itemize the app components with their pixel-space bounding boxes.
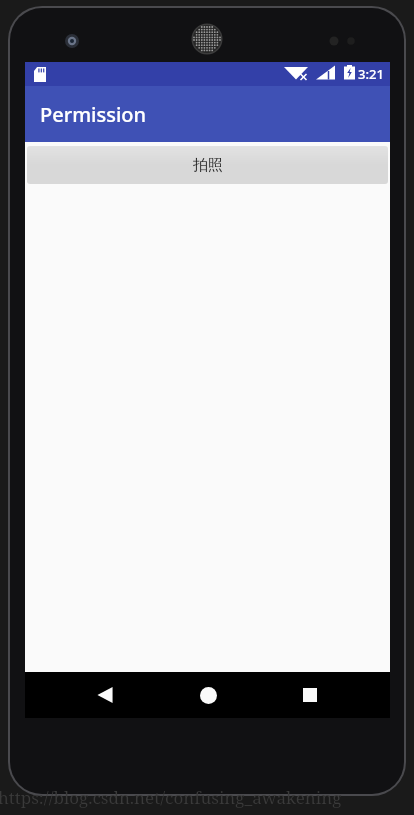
staticText: https://blog.csdn.net/confusing_awakenin…	[0, 786, 342, 809]
button[interactable]: 拍照	[27, 146, 388, 184]
button[interactable]: Recent apps	[288, 673, 332, 717]
button[interactable]: Back	[83, 673, 127, 717]
staticText: 拍照	[193, 156, 223, 175]
staticText: 3:21	[358, 65, 384, 83]
staticText: Permission	[40, 101, 147, 128]
button[interactable]: Home	[186, 673, 230, 717]
